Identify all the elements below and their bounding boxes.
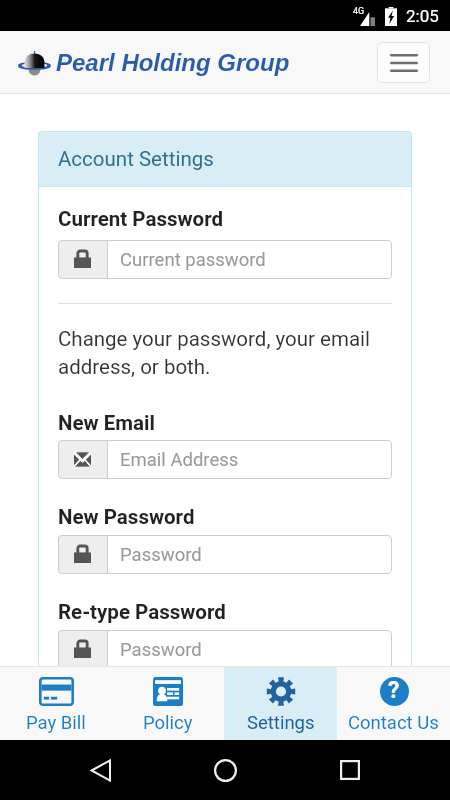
- staticText: 2:05: [406, 6, 439, 26]
- button[interactable]: Home: [203, 748, 247, 792]
- staticText: Contact Us: [348, 712, 439, 734]
- button[interactable]: ?: [337, 667, 450, 740]
- staticText: Policy: [143, 712, 193, 734]
- button[interactable]: Back: [78, 748, 122, 792]
- button[interactable]: Menu: [377, 42, 430, 83]
- button[interactable]: Password: [58, 630, 392, 669]
- staticText: Current password: [120, 249, 266, 271]
- staticText: Change your password, your email address…: [58, 327, 371, 379]
- button[interactable]: Email Address: [58, 440, 392, 479]
- button[interactable]: Recent apps: [328, 748, 372, 792]
- staticText: Email Address: [120, 449, 239, 471]
- staticText: 4G: [353, 6, 365, 17]
- staticText: Settings: [247, 712, 315, 734]
- staticText: Current Password: [58, 207, 224, 231]
- button[interactable]: Settings: [224, 667, 337, 740]
- staticText: Password: [120, 639, 202, 661]
- button[interactable]: Current password: [58, 240, 392, 279]
- button[interactable]: Pay Bill: [0, 667, 112, 740]
- staticText: New Password: [58, 505, 195, 529]
- staticText: Account Settings: [58, 147, 214, 171]
- staticText: Pay Bill: [26, 712, 86, 734]
- button[interactable]: Policy: [112, 667, 224, 740]
- button[interactable]: Password: [58, 535, 392, 574]
- staticText: Password: [120, 544, 202, 566]
- staticText: ?: [388, 677, 400, 704]
- staticText: Pearl Holding Group: [56, 49, 290, 76]
- staticText: Re-type Password: [58, 600, 226, 624]
- staticText: New Email: [58, 411, 155, 435]
